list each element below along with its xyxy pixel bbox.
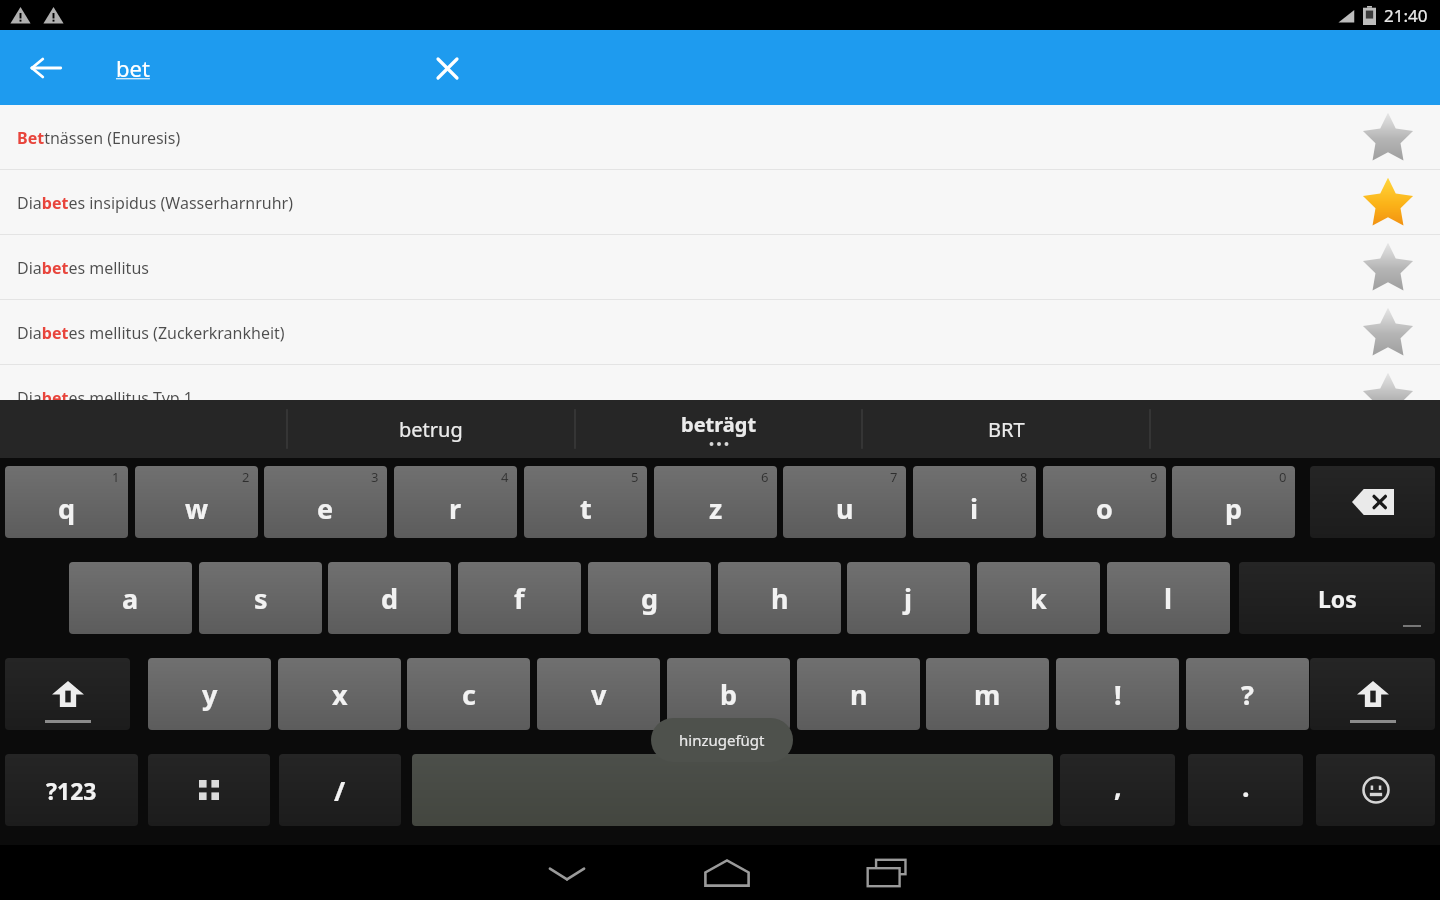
- button[interactable]: 7: [783, 466, 906, 538]
- button[interactable]: Backspace: [1310, 466, 1435, 538]
- staticText: e: [317, 490, 334, 527]
- staticText: l: [1164, 580, 1173, 617]
- staticText: 7: [890, 468, 898, 486]
- button[interactable]: 8: [913, 466, 1036, 538]
- button[interactable]: d: [328, 562, 451, 634]
- button[interactable]: s: [199, 562, 322, 634]
- button[interactable]: b: [667, 658, 790, 730]
- staticText: j: [904, 580, 913, 617]
- button[interactable]: Diabetes mellitus (Zuckerkrankheit): [0, 300, 1440, 365]
- button[interactable]: h: [718, 562, 841, 634]
- button[interactable]: f: [458, 562, 581, 634]
- staticText: BRT: [988, 416, 1025, 443]
- button[interactable]: Clear search: [419, 40, 475, 96]
- button[interactable]: c: [407, 658, 530, 730]
- staticText: !: [1114, 676, 1122, 713]
- button[interactable]: bet: [116, 40, 406, 96]
- staticText: 8: [1020, 468, 1028, 486]
- staticText: 5: [631, 468, 639, 486]
- staticText: ?123: [46, 775, 97, 806]
- button[interactable]: Shift: [5, 658, 130, 730]
- button[interactable]: Shift: [1310, 658, 1435, 730]
- button[interactable]: g: [588, 562, 711, 634]
- button[interactable]: 9: [1043, 466, 1166, 538]
- button[interactable]: .: [1188, 754, 1303, 826]
- button[interactable]: 6: [654, 466, 777, 538]
- button[interactable]: 3: [264, 466, 387, 538]
- button[interactable]: Add favourite: [1358, 303, 1418, 363]
- staticText: n: [850, 676, 868, 713]
- staticText: 3: [371, 468, 379, 486]
- staticText: t: [580, 490, 592, 527]
- button[interactable]: Diabetes mellitus: [0, 235, 1440, 300]
- staticText: p: [1225, 490, 1243, 527]
- staticText: betrug: [399, 416, 463, 443]
- button[interactable]: ?123: [5, 754, 138, 826]
- button[interactable]: l: [1107, 562, 1230, 634]
- staticText: m: [974, 676, 1001, 713]
- staticText: x: [332, 676, 348, 713]
- button[interactable]: Back: [18, 40, 74, 96]
- button[interactable]: betrug: [287, 400, 575, 458]
- button[interactable]: Emoji: [1316, 754, 1435, 826]
- staticText: o: [1096, 490, 1113, 527]
- button[interactable]: Add favourite: [1358, 108, 1418, 168]
- staticText: Bettnässen (Enuresis): [17, 127, 181, 149]
- staticText: b: [720, 676, 738, 713]
- staticText: w: [185, 490, 209, 527]
- staticText: .: [1242, 768, 1250, 805]
- staticText: 21:40: [1384, 4, 1428, 27]
- staticText: beträgt: [681, 411, 757, 438]
- staticText: 2: [242, 468, 250, 486]
- staticText: g: [641, 580, 659, 617]
- staticText: Diabetes mellitus Typ 1: [17, 387, 193, 409]
- button[interactable]: Recent apps: [807, 845, 967, 900]
- button[interactable]: ,: [1060, 754, 1175, 826]
- button[interactable]: Add favourite: [1358, 238, 1418, 298]
- button[interactable]: Remove favourite: [1358, 173, 1418, 233]
- button[interactable]: a: [69, 562, 192, 634]
- button[interactable]: Los: [1239, 562, 1435, 634]
- staticText: Diabetes mellitus (Zuckerkrankheit): [17, 322, 285, 344]
- staticText: 9: [1150, 468, 1158, 486]
- staticText: y: [202, 676, 218, 713]
- staticText: 0: [1279, 468, 1287, 486]
- button[interactable]: Space: [412, 754, 1053, 826]
- button[interactable]: 1: [5, 466, 128, 538]
- button[interactable]: Add favourite: [1358, 368, 1418, 428]
- button[interactable]: m: [926, 658, 1049, 730]
- button[interactable]: Diabetes insipidus (Wasserharnruhr): [0, 170, 1440, 235]
- staticText: h: [771, 580, 789, 617]
- button[interactable]: Home: [647, 845, 807, 900]
- button[interactable]: v: [537, 658, 660, 730]
- staticText: bet: [116, 53, 150, 83]
- button[interactable]: Diabetes mellitus Typ 1: [0, 365, 1440, 430]
- button[interactable]: Change language: [148, 754, 270, 826]
- staticText: c: [462, 676, 476, 713]
- staticText: k: [1030, 580, 1047, 617]
- staticText: a: [122, 580, 139, 617]
- button[interactable]: j: [847, 562, 970, 634]
- staticText: v: [591, 676, 607, 713]
- staticText: 4: [501, 468, 509, 486]
- button[interactable]: k: [977, 562, 1100, 634]
- button[interactable]: /: [279, 754, 401, 826]
- staticText: 6: [761, 468, 769, 486]
- button[interactable]: beträgt: [575, 400, 862, 458]
- button[interactable]: y: [148, 658, 271, 730]
- button[interactable]: x: [278, 658, 401, 730]
- staticText: r: [449, 490, 462, 527]
- button[interactable]: 5: [524, 466, 647, 538]
- button[interactable]: !: [1056, 658, 1179, 730]
- button[interactable]: Hide keyboard: [487, 845, 647, 900]
- staticText: i: [970, 490, 979, 527]
- button[interactable]: 4: [394, 466, 517, 538]
- button[interactable]: ?: [1186, 658, 1309, 730]
- staticText: z: [709, 490, 723, 527]
- button[interactable]: BRT: [862, 400, 1150, 458]
- button[interactable]: Bettnässen (Enuresis): [0, 105, 1440, 170]
- button[interactable]: 0: [1172, 466, 1295, 538]
- button[interactable]: 2: [135, 466, 258, 538]
- staticText: Los: [1318, 583, 1357, 614]
- button[interactable]: n: [797, 658, 920, 730]
